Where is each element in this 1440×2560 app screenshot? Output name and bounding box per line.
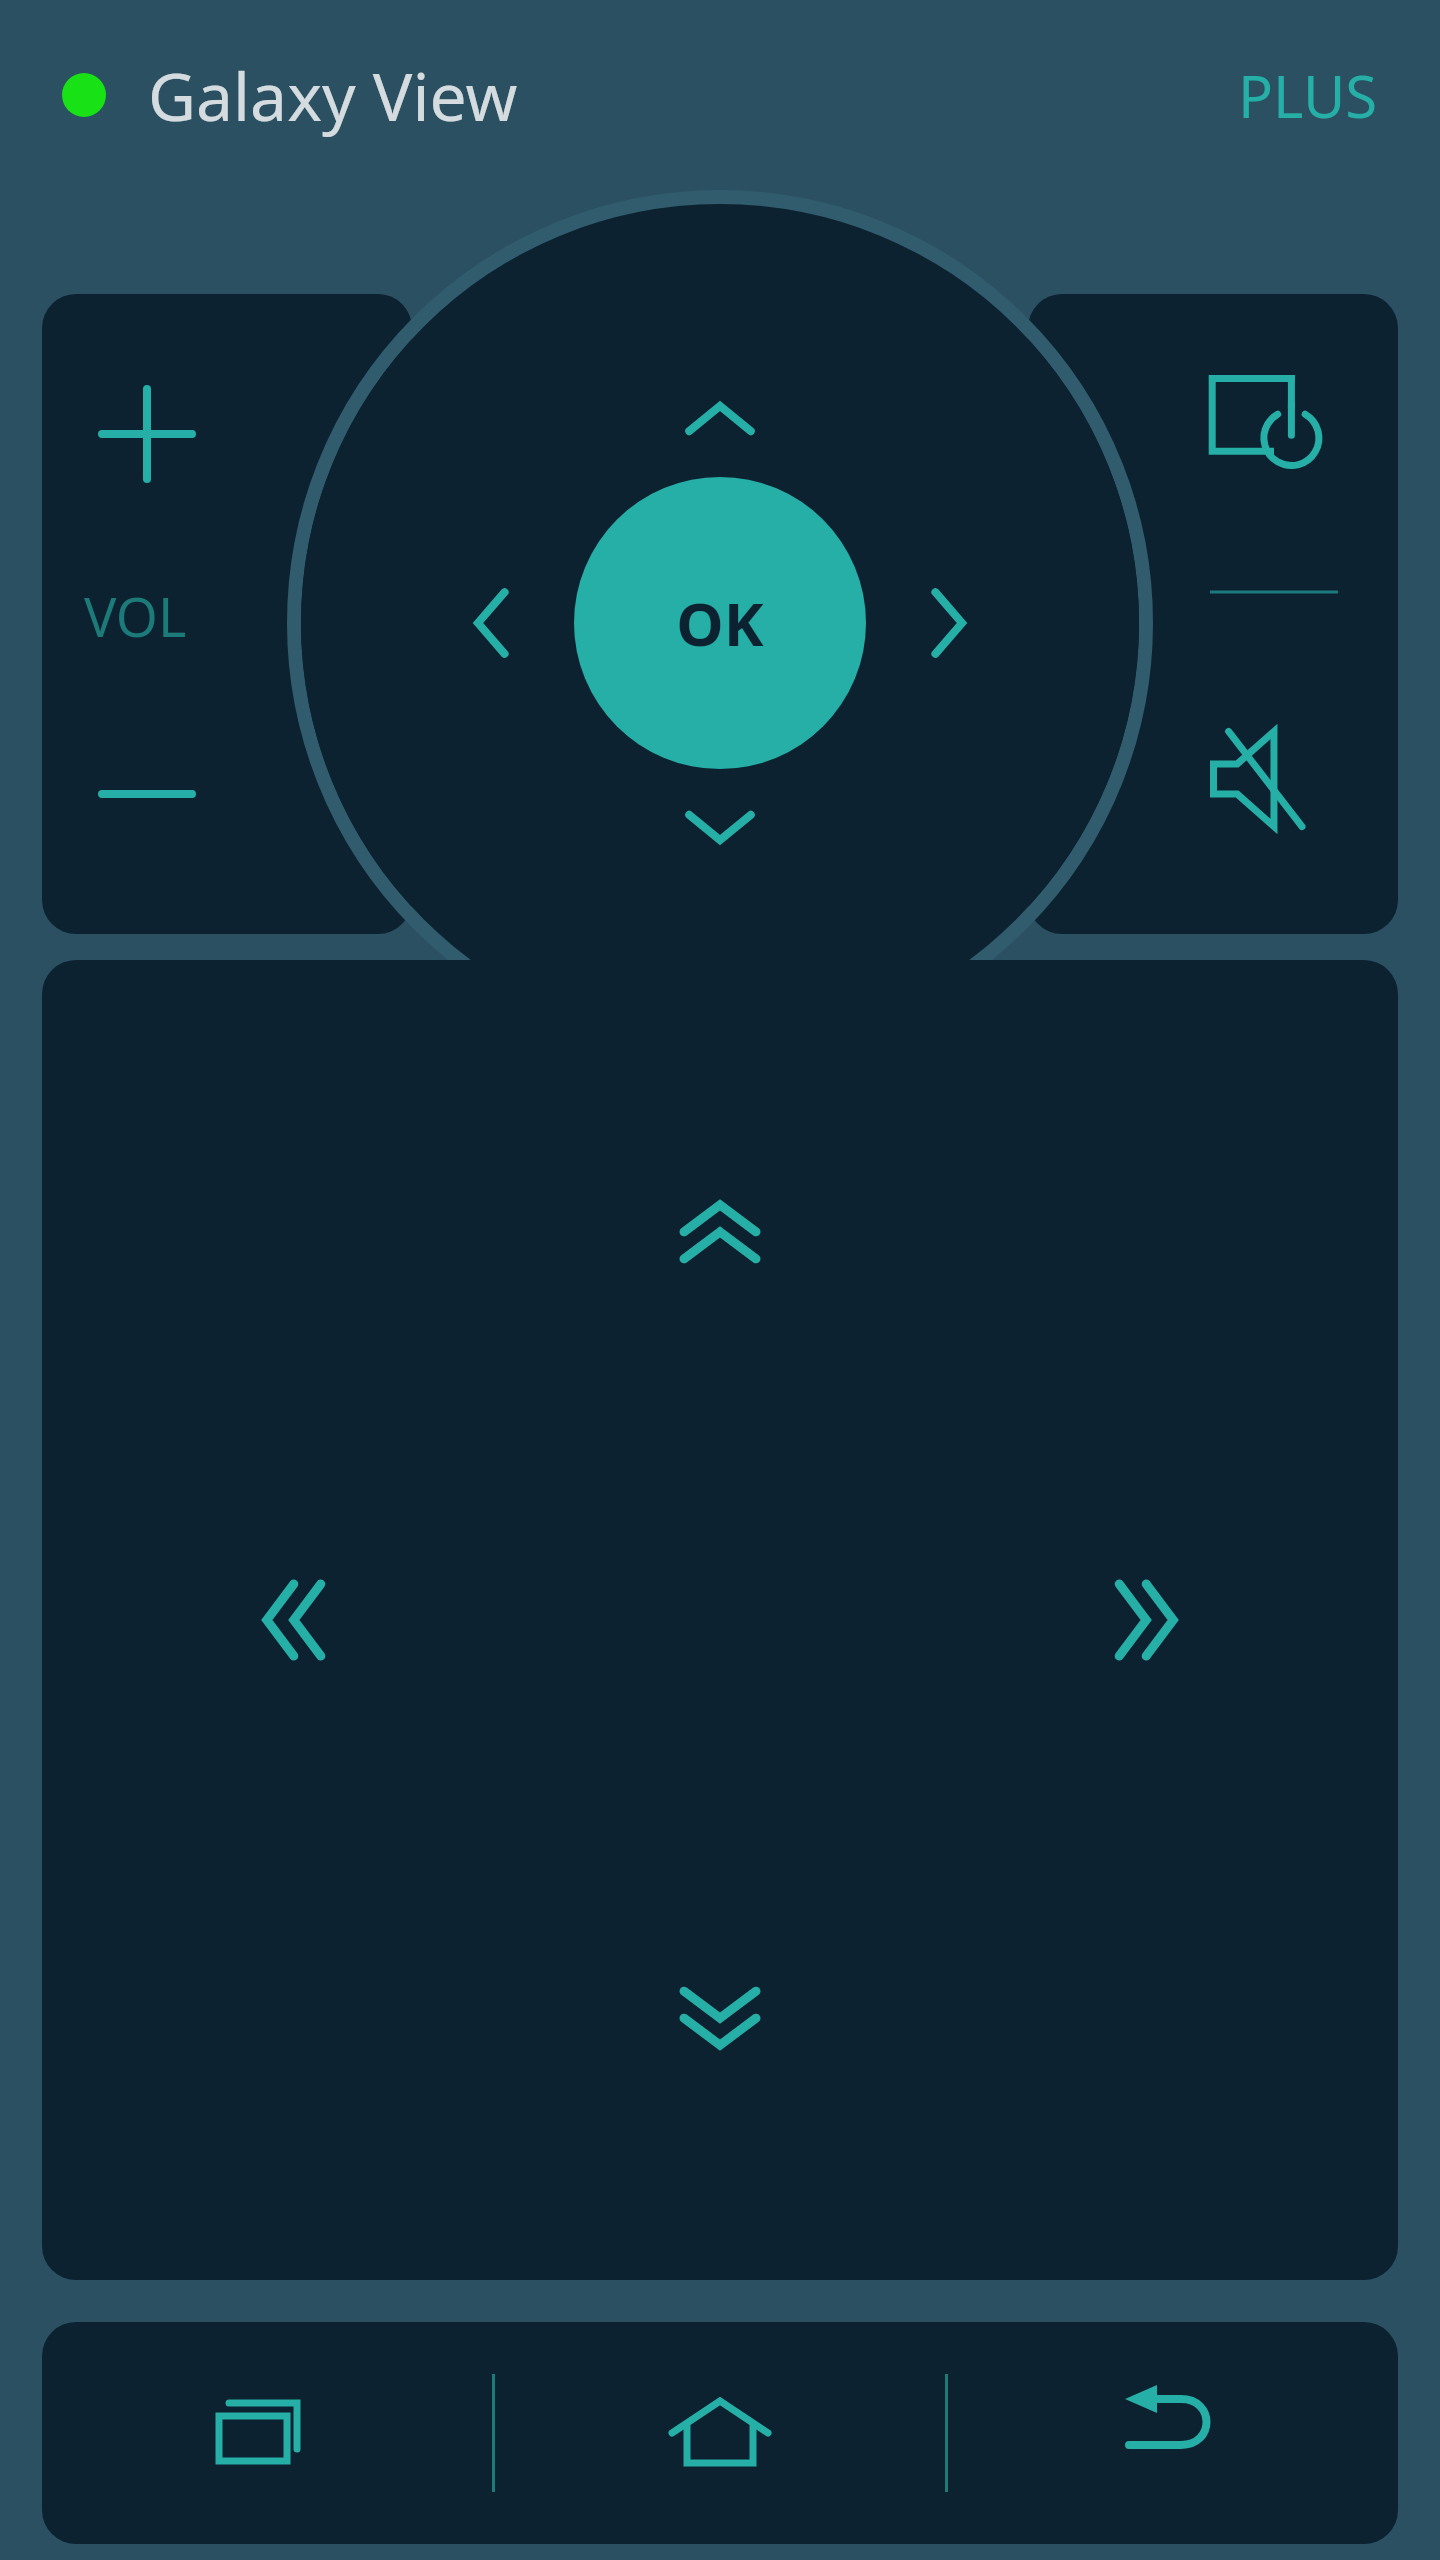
button[interactable]: Volume down	[67, 714, 227, 874]
staticText: PLUS	[1238, 56, 1378, 135]
button[interactable]: Channel up	[630, 1140, 810, 1320]
button[interactable]: Volume up	[67, 354, 227, 514]
button[interactable]: Galaxy View	[62, 50, 518, 140]
staticText: Galaxy View	[148, 50, 518, 140]
button[interactable]: OK	[574, 477, 866, 769]
button[interactable]: Down	[645, 751, 795, 901]
staticText: VOL	[84, 579, 187, 653]
button[interactable]: PLUS	[1238, 56, 1378, 135]
button[interactable]: Fast forward	[1058, 1530, 1238, 1710]
button[interactable]: Home	[495, 2322, 945, 2544]
button[interactable]: Channel down	[630, 1930, 810, 2110]
button[interactable]: Back	[948, 2322, 1398, 2544]
button[interactable]: Right	[873, 548, 1023, 698]
button[interactable]: Channel up	[42, 960, 1398, 2280]
button[interactable]: Mute	[1176, 694, 1346, 864]
button[interactable]: Recents	[42, 2322, 492, 2544]
button[interactable]: Up	[645, 345, 795, 495]
button[interactable]: Power	[1180, 342, 1350, 512]
button[interactable]: Left	[417, 548, 567, 698]
staticText: OK	[676, 582, 764, 664]
button[interactable]: Rewind	[202, 1530, 382, 1710]
